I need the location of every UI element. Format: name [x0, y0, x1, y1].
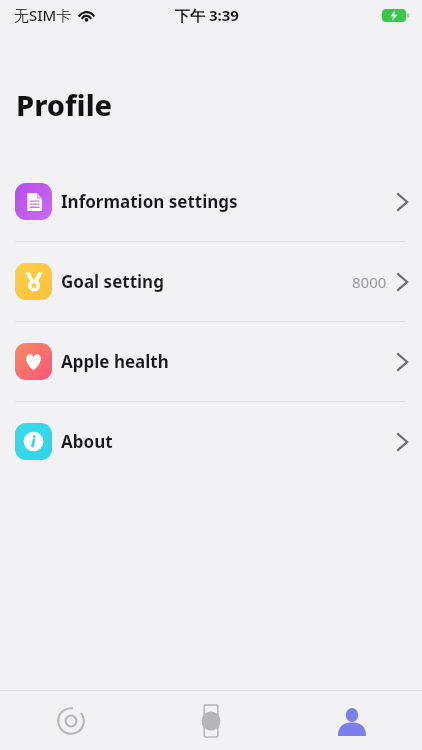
- staticText: Information settings: [61, 190, 238, 213]
- button[interactable]: Apple health: [0, 322, 422, 401]
- staticText: 8000: [352, 272, 387, 292]
- button[interactable]: Activity rings: [1, 691, 141, 750]
- button[interactable]: About: [0, 402, 422, 481]
- staticText: About: [61, 430, 113, 453]
- staticText: 无SIM卡: [14, 5, 72, 25]
- button[interactable]: Goal setting: [0, 242, 422, 321]
- button[interactable]: Watch: [141, 691, 281, 750]
- staticText: Profile: [16, 85, 113, 124]
- button[interactable]: Profile: [282, 691, 422, 750]
- button[interactable]: Information settings: [0, 162, 422, 241]
- staticText: 下午 3:39: [175, 5, 239, 25]
- staticText: Goal setting: [61, 270, 164, 293]
- staticText: Apple health: [61, 350, 169, 373]
